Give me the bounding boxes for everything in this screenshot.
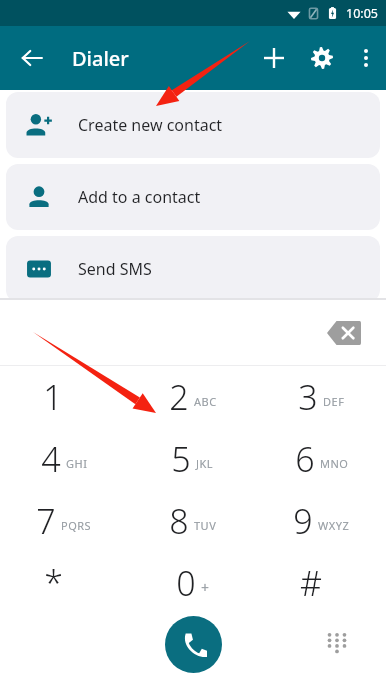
button[interactable]: Call [165,616,222,673]
button[interactable]: Add [250,34,298,82]
staticText: MNO [320,456,349,471]
button[interactable]: Back [8,34,56,82]
button[interactable]: 4 [0,428,128,490]
staticText: PQRS [61,518,92,533]
button[interactable]: Add to a contact [6,164,380,230]
button[interactable]: 9 [257,490,386,552]
button[interactable]: 2 [128,366,257,428]
staticText: 9 [293,498,313,544]
staticText: + [201,578,210,597]
button[interactable]: 0 [128,552,257,614]
staticText: TUV [194,518,217,533]
button[interactable]: Send SMS [6,236,380,302]
button[interactable]: Dialpad [320,626,354,660]
staticText: 4 [41,436,61,482]
staticText: 7 [36,498,56,544]
staticText: # [300,560,322,606]
staticText: * [44,560,63,606]
staticText: 0 [176,560,196,606]
staticText: Dialer [72,45,129,72]
staticText: WXYZ [318,518,350,533]
staticText: 1 [43,374,63,420]
button[interactable]: 1 [0,366,128,428]
button[interactable]: Backspace [322,311,366,355]
staticText: 8 [169,498,189,544]
staticText: GHI [66,456,88,471]
button[interactable]: More options [346,34,386,82]
staticText: Create new contact [78,114,223,136]
staticText: Add to a contact [78,186,201,208]
button[interactable]: Create new contact [6,92,380,158]
staticText: ABC [194,394,217,409]
button[interactable]: 8 [128,490,257,552]
button[interactable]: # [257,552,386,614]
staticText: 2 [169,374,189,420]
button[interactable]: 6 [257,428,386,490]
staticText: JKL [196,456,214,471]
button[interactable]: 7 [0,490,128,552]
staticText: 10:05 [346,5,378,22]
staticText: 5 [171,436,191,482]
staticText: Send SMS [78,258,152,280]
staticText: DEF [323,394,345,409]
button[interactable]: 3 [257,366,386,428]
button[interactable]: * [0,552,128,614]
button[interactable]: 5 [128,428,257,490]
staticText: 6 [295,436,315,482]
button[interactable]: Settings [298,34,346,82]
staticText: 3 [298,374,318,420]
